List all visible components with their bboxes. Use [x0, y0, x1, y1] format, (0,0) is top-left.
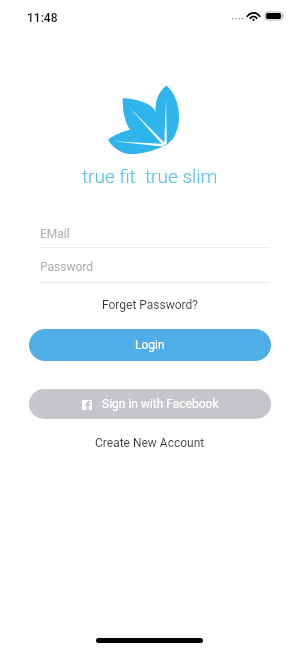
staticText: Forget Password? — [102, 298, 198, 312]
button[interactable]: Create New Account — [95, 436, 205, 450]
staticText: Password — [40, 260, 94, 274]
button[interactable]: EMail — [40, 226, 270, 241]
button[interactable]: Password — [40, 259, 270, 274]
staticText: Sign in with Facebook — [102, 397, 219, 411]
button[interactable]: Sign in with Facebook — [29, 389, 271, 419]
other: Battery — [265, 12, 283, 20]
staticText: 11:48 — [27, 11, 58, 25]
staticText: Create New Account — [95, 436, 205, 450]
staticText: true fit true slim — [82, 165, 218, 187]
button[interactable]: Forget Password? — [102, 298, 198, 312]
staticText: EMail — [40, 227, 70, 241]
other: Wi-Fi — [248, 12, 259, 21]
staticText: Login — [135, 338, 165, 352]
button[interactable]: Login — [29, 329, 271, 361]
